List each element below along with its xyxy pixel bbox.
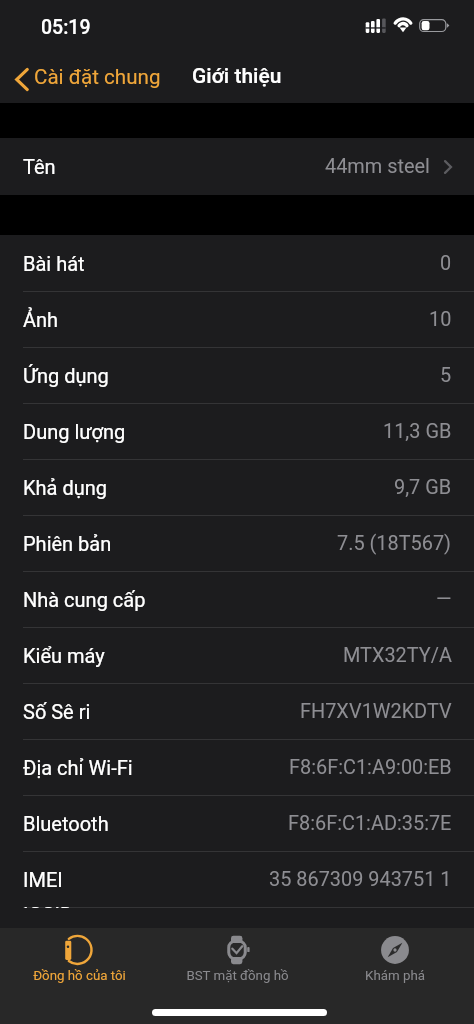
- staticText: Dung lượng: [23, 420, 126, 443]
- button[interactable]: IMEI: [0, 851, 474, 907]
- staticText: 10: [429, 308, 452, 331]
- staticText: Phiên bản: [23, 532, 112, 555]
- staticText: ICCID: [23, 907, 74, 910]
- button[interactable]: Đồng hồ của tôi: [0, 928, 158, 984]
- staticText: 7.5 (18T567): [337, 532, 452, 555]
- button[interactable]: Kiểu máy: [0, 627, 474, 683]
- staticText: FH7XV1W2KDTV: [300, 700, 452, 723]
- staticText: Bài hát: [23, 252, 85, 275]
- staticText: Nhà cung cấp: [23, 588, 146, 611]
- staticText: 44mm steel: [325, 155, 430, 178]
- button[interactable]: Bluetooth: [0, 795, 474, 851]
- staticText: Ứng dụng: [23, 364, 109, 387]
- button[interactable]: Khám phá: [316, 928, 474, 984]
- staticText: 35 867309 943751 1: [269, 868, 452, 891]
- staticText: Khả dụng: [23, 476, 107, 499]
- staticText: Đồng hồ của tôi: [33, 968, 126, 984]
- staticText: Địa chỉ Wi-Fi: [23, 756, 133, 779]
- staticText: Bluetooth: [23, 812, 109, 835]
- staticText: 11,3 GB: [383, 420, 452, 443]
- staticText: BST mặt đồng hồ: [186, 968, 289, 984]
- button[interactable]: Ứng dụng: [0, 347, 474, 403]
- staticText: 0: [440, 252, 452, 275]
- staticText: 05:19: [41, 16, 91, 39]
- button[interactable]: Dung lượng: [0, 403, 474, 459]
- staticText: 5: [440, 364, 452, 387]
- staticText: F8:6F:C1:AD:35:7E: [288, 812, 452, 835]
- button[interactable]: Khả dụng: [0, 459, 474, 515]
- staticText: 8901 2601 0000 0000 0000: [208, 907, 452, 910]
- button[interactable]: Ảnh: [0, 291, 474, 347]
- button[interactable]: Tên: [0, 138, 474, 195]
- staticText: Giới thiệu: [192, 64, 282, 89]
- staticText: Cài đặt chung: [34, 65, 161, 89]
- staticText: Số Sê ri: [23, 700, 91, 723]
- button[interactable]: Số Sê ri: [0, 683, 474, 739]
- staticText: —: [436, 588, 452, 611]
- button[interactable]: Bài hát: [0, 235, 474, 291]
- button[interactable]: Nhà cung cấp: [0, 571, 474, 627]
- button[interactable]: Cài đặt chung: [0, 57, 171, 97]
- staticText: Kiểu máy: [23, 644, 105, 667]
- staticText: MTX32TY/A: [343, 644, 452, 667]
- staticText: 9,7 GB: [394, 476, 452, 499]
- button[interactable]: BST mặt đồng hồ: [158, 928, 316, 984]
- button[interactable]: Phiên bản: [0, 515, 474, 571]
- button[interactable]: Địa chỉ Wi-Fi: [0, 739, 474, 795]
- staticText: F8:6F:C1:A9:00:EB: [289, 756, 452, 779]
- staticText: Khám phá: [365, 968, 425, 984]
- staticText: IMEI: [23, 868, 63, 891]
- staticText: Tên: [23, 155, 56, 178]
- staticText: Ảnh: [23, 308, 59, 331]
- button[interactable]: ICCID: [0, 907, 474, 928]
